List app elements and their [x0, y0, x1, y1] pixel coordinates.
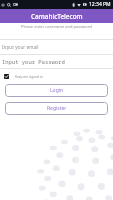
button[interactable]: Register [5, 102, 108, 115]
staticText: 12:34 PM [89, 1, 111, 8]
staticText: Keep me signed in [15, 75, 43, 79]
staticText: Input your email [2, 44, 39, 50]
button[interactable]: Input your email [0, 40, 113, 54]
button[interactable]: Login [5, 84, 108, 97]
button[interactable]: Input your Password [0, 55, 113, 68]
staticText: Register [47, 105, 67, 112]
button[interactable]: Keep me signed in [4, 74, 43, 79]
staticText: Input your Password [2, 58, 65, 65]
staticText: CamahicTelecom [31, 12, 83, 21]
staticText: Please enter username and password [21, 24, 92, 29]
staticText: Login [50, 87, 64, 94]
